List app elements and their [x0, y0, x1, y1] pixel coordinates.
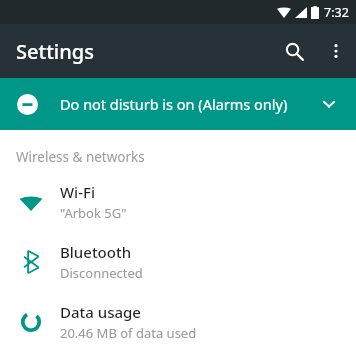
button[interactable]: Wi-Fi [0, 172, 356, 232]
staticText: "Arbok 5G" [60, 204, 127, 222]
staticText: Settings [16, 38, 94, 65]
button[interactable]: Data usage [0, 292, 356, 352]
staticText: 20.46 MB of data used [60, 324, 197, 342]
button[interactable]: Do not disturb is on (Alarms only) [0, 78, 356, 130]
button[interactable]: Search [272, 29, 316, 73]
staticText: Data usage [60, 302, 141, 322]
staticText: Wireless & networks [16, 148, 145, 166]
staticText: 7:32 [324, 4, 349, 21]
button[interactable]: Bluetooth [0, 232, 356, 292]
button[interactable]: More options [316, 31, 356, 71]
staticText: Wi-Fi [60, 182, 95, 202]
staticText: Bluetooth [60, 242, 132, 262]
staticText: Do not disturb is on (Alarms only) [60, 94, 318, 114]
staticText: Disconnected [60, 264, 143, 282]
